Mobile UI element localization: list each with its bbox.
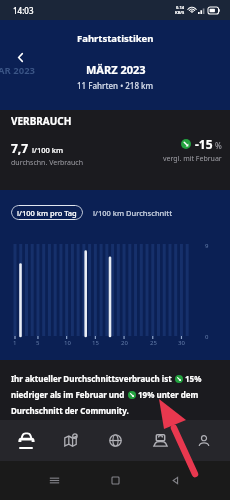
staticText: Ihr aktueller Durchschnittsverbrauch ist xyxy=(11,373,172,384)
staticText: KB/S xyxy=(175,10,185,15)
staticText: MÄRZ 2023 xyxy=(86,62,146,77)
button[interactable]: Zurück xyxy=(8,45,32,69)
button[interactable]: Zurück xyxy=(169,474,182,487)
staticText: 19% unter dem xyxy=(138,389,199,400)
button[interactable]: Profil xyxy=(185,420,223,461)
staticText: Fahrtstatistiken xyxy=(77,32,154,45)
staticText: 30 xyxy=(178,339,185,347)
staticText: 0 xyxy=(205,333,209,341)
button[interactable]: Menü xyxy=(48,474,61,487)
button[interactable]: Shop xyxy=(141,420,179,461)
button[interactable]: Fahrzeug xyxy=(7,420,45,461)
staticText: l/100 km pro Tag xyxy=(17,208,77,218)
staticText: l/100 km xyxy=(32,145,64,155)
staticText: AR 2023 xyxy=(0,64,36,77)
staticText: 20 xyxy=(121,339,128,347)
staticText: % xyxy=(215,140,222,151)
staticText: vergl. mit Februar xyxy=(163,154,222,164)
staticText: -15 xyxy=(195,136,213,152)
staticText: 15 xyxy=(92,339,99,347)
button[interactable]: Karte xyxy=(51,420,89,461)
button[interactable]: Community xyxy=(96,420,134,461)
staticText: VERBRAUCH xyxy=(11,114,72,128)
button[interactable]: l/100 km Durchschnitt xyxy=(87,205,179,220)
staticText: 7,7 xyxy=(11,140,29,156)
button[interactable]: Home xyxy=(109,474,122,487)
staticText: 10 xyxy=(64,339,71,347)
staticText: 25 xyxy=(150,339,157,347)
staticText: 1 xyxy=(13,339,17,347)
staticText: l/100 km Durchschnitt xyxy=(93,208,173,218)
staticText: 0.14 xyxy=(176,5,184,10)
staticText: 11 Fahrten • 218 km xyxy=(77,80,154,91)
button[interactable]: l/100 km pro Tag xyxy=(11,205,83,220)
staticText: 15% xyxy=(185,373,202,384)
staticText: durchschn. Verbrauch xyxy=(11,158,84,168)
staticText: 14:03 xyxy=(13,5,34,16)
staticText: 5 xyxy=(36,339,40,347)
staticText: Durchschnitt der Community. xyxy=(11,405,129,416)
staticText: niedriger als im Februar und xyxy=(11,389,125,400)
staticText: 9 xyxy=(205,242,209,250)
